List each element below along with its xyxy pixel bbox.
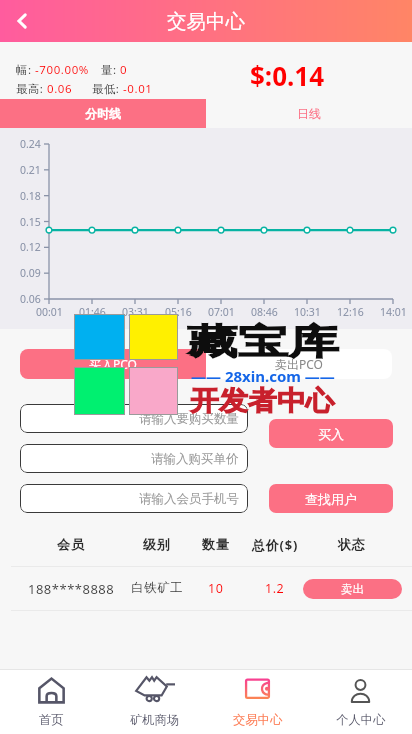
staticText: 分时线 <box>85 106 121 121</box>
button[interactable]: 买入PCO <box>20 349 206 379</box>
staticText: 会员 <box>57 536 85 552</box>
staticText: 量: <box>101 62 120 78</box>
staticText: 14:01 <box>380 305 407 319</box>
staticText: 状态 <box>338 536 366 552</box>
staticText: 数量 <box>202 536 230 552</box>
button[interactable]: 请输入会员手机号 <box>20 484 248 513</box>
staticText: 05:16 <box>165 305 192 319</box>
button[interactable]: 个人中心 <box>309 670 412 734</box>
staticText: 最低: <box>92 81 123 97</box>
staticText: 查找用户 <box>305 491 357 507</box>
staticText: 0.12 <box>20 240 41 254</box>
staticText: 0 <box>120 62 128 78</box>
staticText: 幅: <box>16 62 35 78</box>
staticText: 03:31 <box>122 305 149 319</box>
staticText: 07:01 <box>208 305 235 319</box>
staticText: 0.15 <box>20 215 41 229</box>
staticText: 0.18 <box>20 189 41 203</box>
staticText: -700.00% <box>35 62 90 78</box>
staticText: —— 28xin.com —— <box>191 366 335 386</box>
staticText: 请输入购买单价 <box>151 451 239 467</box>
staticText: 首页 <box>39 712 64 727</box>
button[interactable]: 日线 <box>206 99 412 128</box>
button[interactable]: 请输入购买单价 <box>20 444 248 473</box>
button[interactable]: 首页 <box>0 670 103 734</box>
staticText: 日线 <box>297 106 321 121</box>
staticText: 0.21 <box>20 163 41 177</box>
staticText: 请输入要购买数量 <box>139 411 239 427</box>
staticText: 0.06 <box>20 292 41 306</box>
staticText: 0.06 <box>47 81 73 97</box>
button[interactable]: Back <box>0 0 44 42</box>
staticText: $:0.14 <box>250 58 325 93</box>
staticText: 10:31 <box>294 305 321 319</box>
staticText: 10 <box>208 580 224 597</box>
staticText: 总价($) <box>252 536 299 554</box>
button[interactable]: 卖出 <box>303 579 402 599</box>
staticText: 01:46 <box>79 305 106 319</box>
staticText: 个人中心 <box>336 712 386 727</box>
staticText: -0.01 <box>123 81 153 97</box>
staticText: 开发者中心 <box>190 384 334 418</box>
staticText: 矿机商场 <box>130 712 180 727</box>
staticText: 买入 <box>318 426 344 442</box>
staticText: 08:46 <box>251 305 278 319</box>
staticText: 0.24 <box>20 137 41 151</box>
staticText: 00:01 <box>36 305 63 319</box>
button[interactable]: 交易中心 <box>206 670 309 734</box>
button[interactable]: 买入 <box>269 419 393 448</box>
staticText: 卖出 <box>341 582 364 596</box>
staticText: 卖出PCO <box>275 356 323 372</box>
button[interactable]: 查找用户 <box>269 484 393 513</box>
button[interactable]: 卖出PCO <box>206 349 392 379</box>
button[interactable]: 请输入要购买数量 <box>20 404 248 433</box>
staticText: 买入PCO <box>89 356 137 372</box>
staticText: 级别 <box>143 536 171 552</box>
staticText: 藏宝库 <box>187 320 339 365</box>
button[interactable]: 矿机商场 <box>103 670 206 734</box>
staticText: 请输入会员手机号 <box>139 491 239 507</box>
staticText: 交易中心 <box>233 712 283 727</box>
staticText: 12:16 <box>337 305 364 319</box>
staticText: 1.2 <box>265 580 285 597</box>
staticText: 0.09 <box>20 266 41 280</box>
staticText: 白铁矿工 <box>131 580 183 596</box>
staticText: 交易中心 <box>167 9 245 34</box>
button[interactable]: 分时线 <box>0 99 206 128</box>
staticText: 188****8888 <box>28 580 115 598</box>
staticText: 最高: <box>16 81 47 97</box>
